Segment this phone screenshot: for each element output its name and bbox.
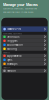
button[interactable]: Automation — [1, 43, 47, 47]
staticText: Shortcuts — [7, 35, 19, 39]
staticText: Sync — [7, 58, 12, 62]
staticText: Customize shortcuts, automations — [3, 7, 37, 10]
button[interactable]: Macros Pro — [1, 26, 47, 32]
staticText: MENU — [3, 51, 10, 54]
button[interactable]: Sync — [1, 58, 47, 62]
staticText: ABOUT — [3, 66, 10, 69]
staticText: Automation — [7, 43, 23, 47]
button[interactable]: Backups — [1, 62, 47, 66]
staticText: GENERAL CONFIG — [3, 32, 22, 35]
button[interactable]: Triggers — [1, 39, 47, 43]
staticText: and editing tools in one place. — [3, 10, 34, 13]
button[interactable]: Version — [1, 69, 47, 73]
button[interactable]: Appearance — [1, 54, 47, 58]
button[interactable]: Shortcuts — [1, 35, 47, 39]
staticText: Version — [7, 69, 16, 73]
button[interactable]: Editing — [1, 47, 47, 51]
staticText: Triggers — [7, 39, 17, 43]
staticText: Backups — [7, 62, 17, 66]
staticText: Editing — [7, 47, 17, 51]
staticText: Manage your Macros — [3, 2, 38, 7]
staticText: Appearance — [7, 54, 21, 58]
staticText: Macros Pro — [7, 27, 21, 31]
